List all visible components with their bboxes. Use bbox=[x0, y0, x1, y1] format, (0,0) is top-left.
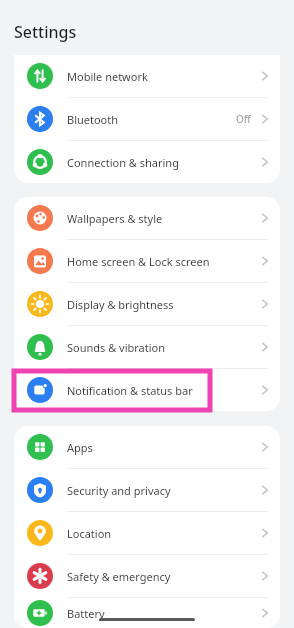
staticText: Security and privacy bbox=[67, 483, 258, 498]
button[interactable]: Wallpapers & style bbox=[14, 197, 280, 239]
staticText: Connection & sharing bbox=[67, 155, 258, 170]
staticText: Safety & emergency bbox=[67, 569, 258, 584]
button[interactable]: Battery bbox=[14, 598, 280, 628]
button[interactable]: Bluetooth bbox=[14, 98, 280, 140]
button[interactable]: Home screen & Lock screen bbox=[14, 240, 280, 282]
button[interactable]: Notification & status bar bbox=[14, 369, 280, 411]
button[interactable]: Connection & sharing bbox=[14, 141, 280, 183]
staticText: Off bbox=[236, 112, 251, 126]
button[interactable]: Location bbox=[14, 512, 280, 554]
button[interactable]: Sounds & vibration bbox=[14, 326, 280, 368]
button[interactable]: Display & brightness bbox=[14, 283, 280, 325]
staticText: Home screen & Lock screen bbox=[67, 254, 258, 269]
button[interactable]: Apps bbox=[14, 426, 280, 468]
staticText: Sounds & vibration bbox=[67, 340, 258, 355]
staticText: Location bbox=[67, 526, 258, 541]
staticText: Battery bbox=[67, 606, 258, 621]
button[interactable]: Mobile network bbox=[14, 55, 280, 97]
staticText: Wallpapers & style bbox=[67, 211, 258, 226]
staticText: Display & brightness bbox=[67, 297, 258, 312]
button[interactable]: Security and privacy bbox=[14, 469, 280, 511]
staticText: Mobile network bbox=[67, 69, 258, 84]
button[interactable]: Safety & emergency bbox=[14, 555, 280, 597]
staticText: Notification & status bar bbox=[67, 383, 258, 398]
staticText: Bluetooth bbox=[67, 112, 236, 127]
staticText: Settings bbox=[14, 21, 77, 43]
staticText: Apps bbox=[67, 440, 258, 455]
